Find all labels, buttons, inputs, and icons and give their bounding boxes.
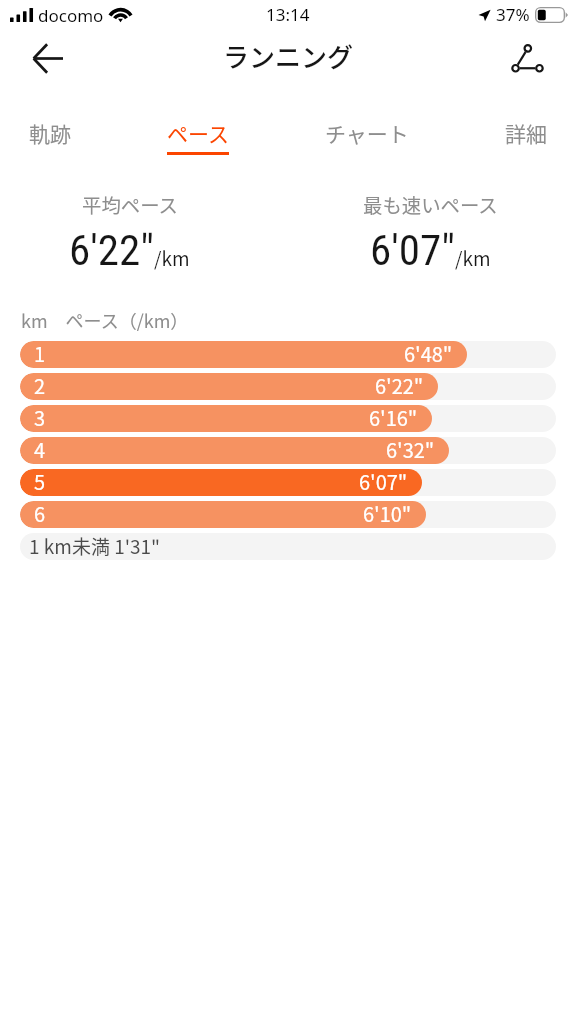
staticText: docomo bbox=[38, 4, 104, 27]
staticText: 6'22" bbox=[69, 225, 154, 275]
staticText: 6'07" bbox=[359, 469, 408, 494]
staticText: 1 bbox=[34, 341, 46, 366]
staticText: 詳細 bbox=[505, 118, 547, 148]
staticText: 最も速いペース bbox=[363, 190, 498, 218]
staticText: 6'22" bbox=[375, 373, 424, 398]
button[interactable]: 軌跡 bbox=[29, 106, 71, 165]
button[interactable]: Back bbox=[24, 35, 71, 82]
button[interactable]: 5 bbox=[20, 469, 556, 496]
staticText: 2 bbox=[34, 373, 46, 398]
staticText: 6'10" bbox=[363, 501, 412, 526]
button[interactable]: チャート bbox=[325, 106, 409, 165]
staticText: チャート bbox=[325, 118, 409, 148]
staticText: 6'07" bbox=[370, 225, 455, 275]
staticText: 平均ペース bbox=[82, 190, 178, 218]
staticText: 6'16" bbox=[369, 405, 418, 430]
button[interactable]: 3 bbox=[20, 405, 556, 432]
staticText: 3 bbox=[34, 405, 46, 430]
staticText: 13:14 bbox=[266, 3, 310, 26]
staticText: km ペース（/km） bbox=[21, 307, 189, 333]
staticText: 4 bbox=[34, 437, 46, 462]
staticText: /km bbox=[455, 244, 491, 272]
staticText: /km bbox=[154, 244, 190, 272]
staticText: 5 bbox=[34, 469, 46, 494]
staticText: 37% bbox=[496, 3, 530, 26]
staticText: ランニング bbox=[223, 37, 354, 75]
button[interactable]: Share bbox=[504, 35, 551, 82]
button[interactable]: 1 km未満 1'31" bbox=[20, 533, 556, 560]
button[interactable]: ペース bbox=[167, 106, 229, 165]
staticText: 1 km未満 1'31" bbox=[29, 533, 161, 559]
staticText: ペース bbox=[167, 118, 229, 148]
button[interactable]: 6 bbox=[20, 501, 556, 528]
button[interactable]: 詳細 bbox=[505, 106, 547, 165]
button[interactable]: 4 bbox=[20, 437, 556, 464]
button[interactable]: 2 bbox=[20, 373, 556, 400]
staticText: 6'32" bbox=[386, 437, 435, 462]
staticText: 軌跡 bbox=[29, 118, 71, 148]
staticText: 6 bbox=[34, 501, 46, 526]
staticText: 6'48" bbox=[404, 341, 453, 366]
button[interactable]: 1 bbox=[20, 341, 556, 368]
